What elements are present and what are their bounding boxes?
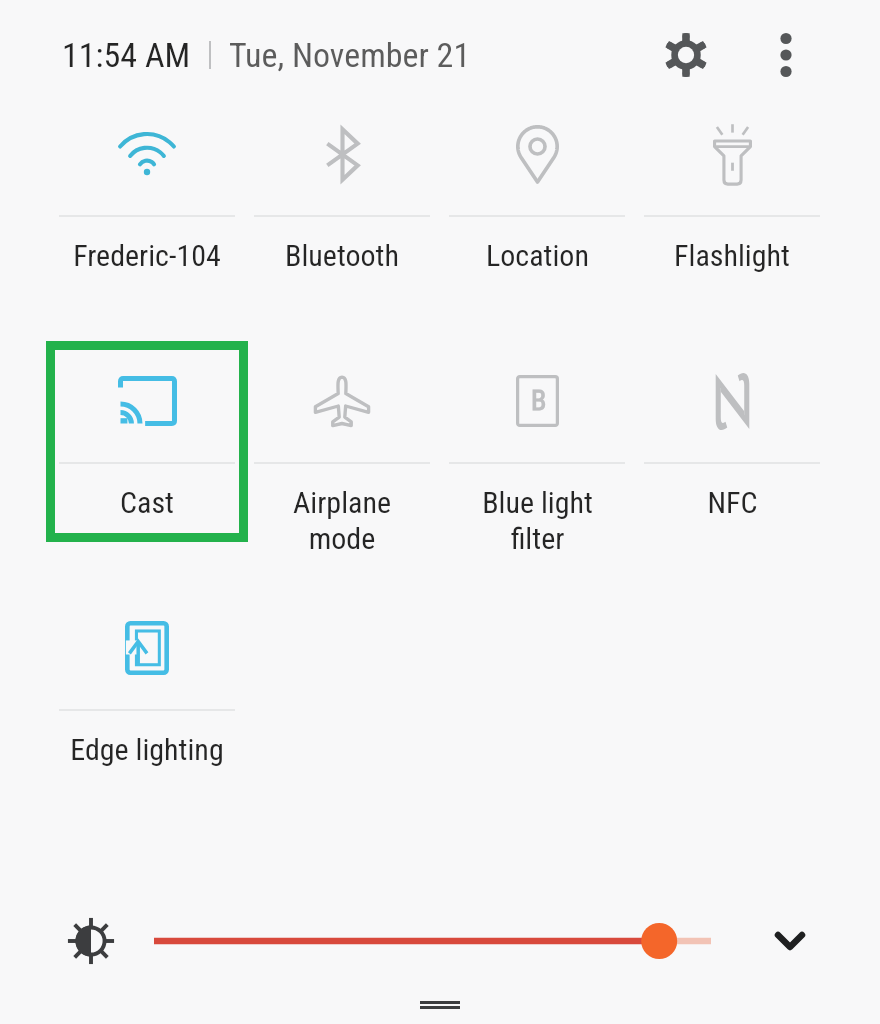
staticText: B xyxy=(531,384,547,417)
button[interactable]: Flashlight xyxy=(631,94,833,295)
staticText: Edge lighting xyxy=(70,732,224,767)
button[interactable]: B xyxy=(436,341,638,542)
staticText: Bluetooth xyxy=(285,238,399,273)
button[interactable]: NFC xyxy=(631,341,833,542)
button[interactable]: Bluetooth xyxy=(241,94,443,295)
button[interactable]: Expand quick settings xyxy=(752,903,828,979)
button[interactable]: Edge lighting xyxy=(46,588,248,789)
staticText: Frederic-104 xyxy=(73,238,221,273)
button[interactable]: Frederic-104 xyxy=(46,94,248,295)
staticText: Flashlight xyxy=(674,238,790,273)
button[interactable]: Brightness slider xyxy=(154,916,711,966)
button[interactable]: Brightness xyxy=(62,912,120,970)
button[interactable]: More options xyxy=(746,15,826,95)
staticText: 11:54 AM xyxy=(62,35,191,75)
staticText: NFC xyxy=(707,485,758,520)
button[interactable]: Cast xyxy=(46,341,248,542)
button[interactable]: Panel handle xyxy=(420,1001,460,1009)
button[interactable]: Airplane mode xyxy=(241,341,443,542)
staticText: Tue, November 21 xyxy=(229,35,471,75)
button[interactable]: Location xyxy=(436,94,638,295)
button[interactable]: Settings xyxy=(646,15,726,95)
staticText: Location xyxy=(486,238,589,273)
staticText: Airplane mode xyxy=(293,485,391,556)
staticText: Cast xyxy=(120,485,174,520)
staticText: Blue light filter xyxy=(482,485,593,556)
